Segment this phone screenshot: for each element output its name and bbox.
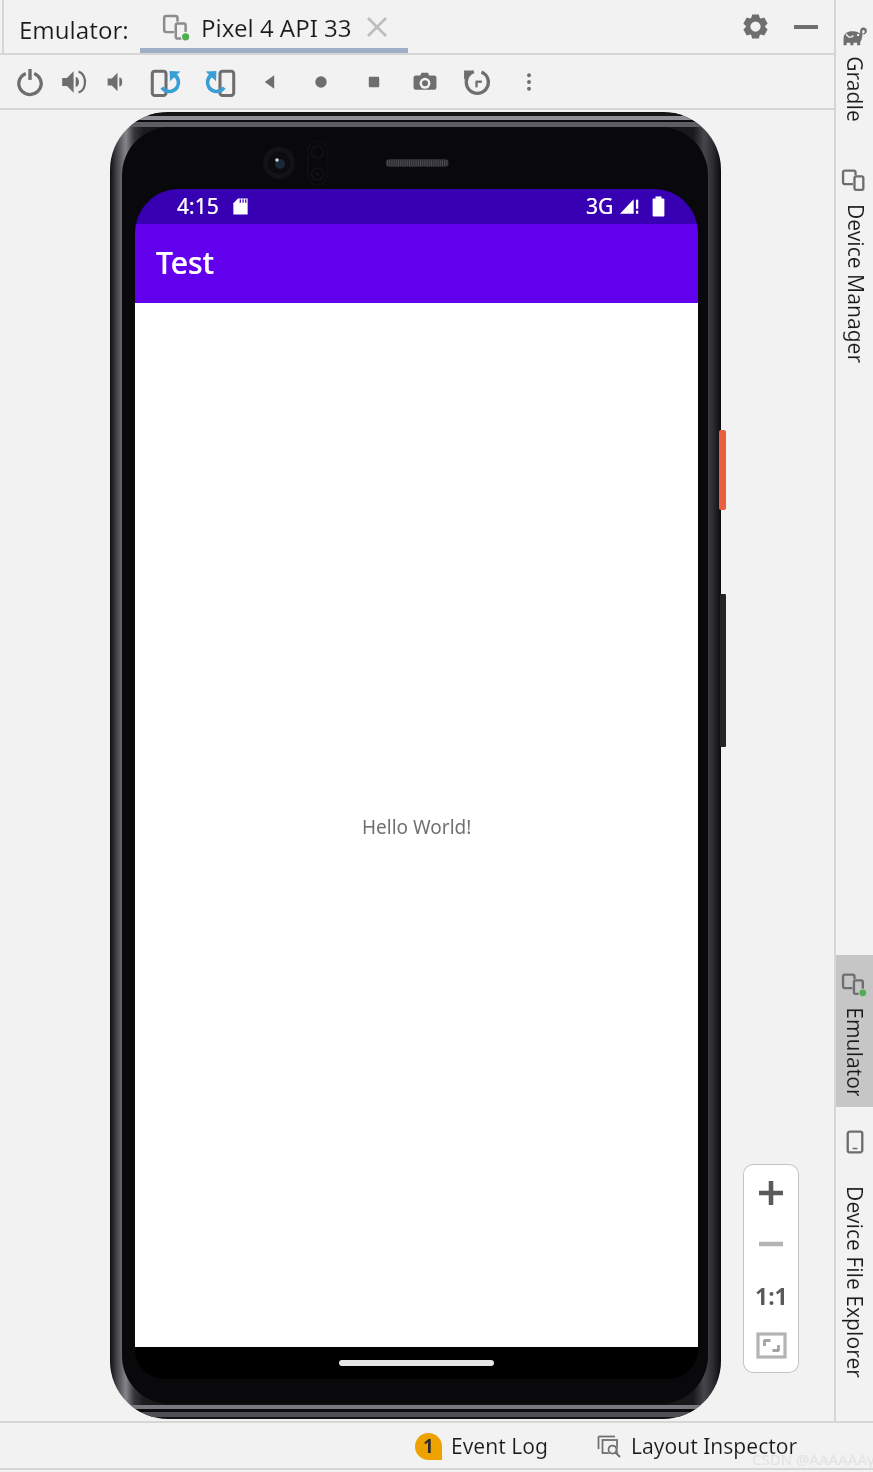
button[interactable]: Device File Explorer xyxy=(836,1118,873,1410)
staticText: Test xyxy=(156,242,215,283)
button[interactable]: Device Manager xyxy=(836,152,873,378)
button[interactable]: Pixel 4 API 33 xyxy=(163,6,389,48)
button[interactable]: Screenshot xyxy=(404,61,446,103)
staticText: 4:15 xyxy=(177,192,219,221)
staticText: 1 xyxy=(423,1433,434,1459)
button[interactable]: Minimize xyxy=(786,7,826,47)
button[interactable]: 1:1 xyxy=(743,1269,799,1321)
button[interactable]: Rotate left xyxy=(145,61,187,103)
button[interactable]: Close tab xyxy=(365,15,389,39)
staticText: Event Log xyxy=(451,1432,548,1461)
button[interactable]: Settings xyxy=(735,7,775,47)
staticText: Device File Explorer xyxy=(840,1186,869,1378)
button[interactable]: Volume down xyxy=(96,61,138,103)
staticText: Gradle xyxy=(840,56,869,121)
button[interactable]: Back xyxy=(249,61,291,103)
button[interactable]: Zoom in xyxy=(743,1168,799,1218)
staticText: Hello World! xyxy=(362,814,472,840)
staticText: CSDN @AAAAAAyl xyxy=(752,1449,873,1469)
staticText: Emulator xyxy=(840,1007,869,1096)
staticText: Layout Inspector xyxy=(631,1432,798,1461)
button[interactable]: Emulator xyxy=(836,955,873,1107)
button[interactable]: Overview xyxy=(353,61,395,103)
button[interactable]: Power xyxy=(9,61,51,103)
button[interactable]: Layout Inspector xyxy=(597,1427,798,1465)
button[interactable]: History xyxy=(455,61,497,103)
staticText: 1:1 xyxy=(755,1280,788,1311)
staticText: Device Manager xyxy=(840,203,869,363)
staticText: Pixel 4 API 33 xyxy=(201,11,352,44)
button[interactable]: Rotate right xyxy=(198,61,240,103)
staticText: Emulator: xyxy=(19,13,129,46)
button[interactable]: Home xyxy=(300,61,342,103)
button[interactable]: 1 xyxy=(415,1427,548,1465)
button[interactable]: Gradle xyxy=(836,14,873,138)
button[interactable]: More xyxy=(508,61,550,103)
button[interactable]: Fit to screen xyxy=(743,1320,799,1370)
button[interactable]: Zoom out xyxy=(743,1219,799,1269)
staticText: 3G xyxy=(586,192,614,221)
button[interactable]: Volume up xyxy=(52,61,94,103)
